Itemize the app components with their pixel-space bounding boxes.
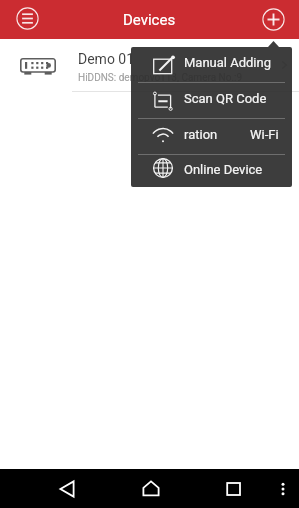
staticText: Demo 01: [78, 51, 135, 67]
button[interactable]: Demo 01: [0, 39, 299, 91]
staticText: Scan QR Code: [184, 91, 267, 106]
button[interactable]: Recent apps: [224, 479, 244, 499]
staticText: ration: [184, 127, 218, 142]
staticText: Manual Adding: [184, 55, 272, 70]
staticText: HiDDNS: demopvo113, Camera No.:9: [78, 72, 243, 84]
button[interactable]: ration: [131, 119, 292, 154]
button[interactable]: Open navigation menu: [16, 7, 39, 30]
button[interactable]: Back: [57, 479, 77, 499]
staticText: Wi-Fi: [250, 127, 279, 142]
staticText: Online Device: [184, 162, 263, 177]
button[interactable]: Manual Adding: [131, 47, 292, 82]
staticText: Devices: [123, 11, 176, 29]
button[interactable]: Scan QR Code: [131, 83, 292, 118]
button[interactable]: Add device: [262, 8, 285, 31]
button[interactable]: Online Device: [131, 155, 292, 187]
button[interactable]: More options: [274, 480, 292, 498]
button[interactable]: Home: [141, 479, 161, 499]
